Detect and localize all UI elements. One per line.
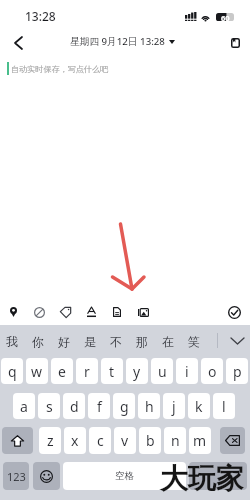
staticText: y [133, 362, 141, 381]
staticText: o [208, 362, 217, 381]
staticText: r [84, 362, 90, 381]
staticText: 在 [162, 334, 174, 349]
staticText: 大玩家 [160, 461, 244, 496]
staticText: p [233, 362, 242, 381]
button[interactable]: u [151, 358, 173, 384]
button[interactable]: Text format [78, 299, 104, 325]
button[interactable]: More suggestions [224, 328, 250, 354]
staticText: 空格 [115, 470, 134, 482]
staticText: z [47, 431, 54, 450]
staticText: c [97, 431, 104, 450]
staticText: v [121, 431, 129, 450]
button[interactable]: Enter [189, 462, 247, 490]
button[interactable]: o [201, 358, 223, 384]
staticText: d [70, 397, 79, 416]
button[interactable]: 好 [51, 328, 77, 354]
staticText: m [193, 431, 207, 450]
button[interactable]: j [163, 393, 185, 419]
staticText: a [20, 397, 28, 416]
button[interactable]: 不 [103, 328, 129, 354]
button[interactable]: b [139, 427, 161, 454]
button[interactable]: f [88, 393, 110, 419]
button[interactable]: m [189, 427, 211, 454]
button[interactable]: 空格 [63, 462, 186, 490]
staticText: 好 [58, 334, 70, 349]
button[interactable]: k [188, 393, 210, 419]
button[interactable]: Back [0, 30, 36, 56]
staticText: h [145, 397, 154, 416]
button[interactable]: e [51, 358, 73, 384]
staticText: b [146, 431, 155, 450]
button[interactable]: g [113, 393, 135, 419]
staticText: 123 [7, 469, 26, 484]
button[interactable]: r [76, 358, 98, 384]
button[interactable]: q [1, 358, 23, 384]
button[interactable]: 星期四 9月12日 13:28 [66, 32, 179, 51]
button[interactable]: w [26, 358, 48, 384]
staticText: f [97, 397, 102, 416]
staticText: x [71, 431, 79, 450]
button[interactable]: h [138, 393, 160, 419]
staticText: e [58, 362, 66, 381]
button[interactable]: 在 [155, 328, 181, 354]
button[interactable]: Shift [2, 427, 33, 454]
button[interactable]: v [114, 427, 136, 454]
button[interactable]: c [89, 427, 111, 454]
button[interactable]: x [64, 427, 86, 454]
button[interactable]: d [63, 393, 85, 419]
staticText: s [46, 397, 53, 416]
button[interactable]: 你 [25, 328, 51, 354]
staticText: i [185, 362, 189, 381]
button[interactable]: s [38, 393, 60, 419]
button[interactable]: Block [26, 299, 52, 325]
button[interactable]: p [226, 358, 248, 384]
button[interactable]: 123 [3, 462, 29, 490]
button[interactable]: Save [220, 30, 250, 56]
button[interactable]: l [213, 393, 235, 419]
staticText: 不 [110, 334, 122, 349]
staticText: t [109, 362, 115, 381]
button[interactable]: a [13, 393, 35, 419]
staticText: n [171, 431, 180, 450]
staticText: j [172, 397, 176, 416]
button[interactable]: z [39, 427, 61, 454]
button[interactable]: Tag [52, 299, 78, 325]
staticText: 自动实时保存，写点什么吧 [11, 64, 109, 74]
staticText: 笑 [188, 334, 200, 349]
button[interactable]: Done [222, 300, 247, 325]
button[interactable]: Image [130, 299, 156, 325]
button[interactable]: 那 [129, 328, 155, 354]
staticText: k [195, 397, 203, 416]
button[interactable]: i [176, 358, 198, 384]
staticText: 13:28 [25, 8, 56, 24]
staticText: w [31, 362, 43, 381]
staticText: 我 [6, 334, 18, 349]
staticText: 那 [136, 334, 148, 349]
staticText: q [8, 362, 17, 381]
button[interactable]: Emoji [33, 462, 60, 490]
button[interactable]: y [126, 358, 148, 384]
staticText: 60 [221, 13, 230, 21]
staticText: 是 [84, 334, 96, 349]
staticText: 你 [32, 334, 44, 349]
button[interactable]: Backspace [220, 427, 245, 454]
button[interactable]: 笑 [181, 328, 207, 354]
button[interactable]: Document [104, 299, 130, 325]
button[interactable]: 我 [0, 328, 25, 354]
button[interactable]: t [101, 358, 123, 384]
staticText: l [222, 397, 226, 416]
staticText: 星期四 9月12日 13:28 [70, 35, 165, 48]
staticText: u [158, 362, 167, 381]
button[interactable]: 是 [77, 328, 103, 354]
staticText: g [120, 397, 129, 416]
button[interactable]: n [164, 427, 186, 454]
button[interactable]: Location [0, 299, 26, 325]
